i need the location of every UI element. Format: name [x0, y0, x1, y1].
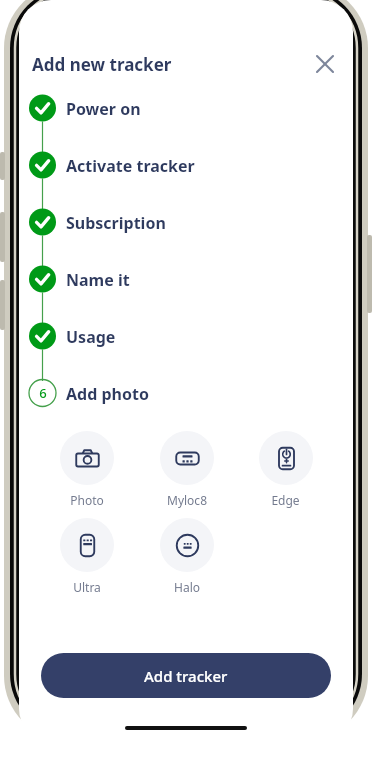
button[interactable]: Name it [19, 265, 353, 322]
staticText: Subscription [66, 212, 166, 234]
staticText: Power on [66, 98, 141, 120]
staticText: Add photo [66, 383, 149, 405]
staticText: Name it [66, 269, 130, 291]
button[interactable]: Halo [137, 518, 236, 595]
staticText: 6 [39, 384, 47, 402]
staticText: Usage [66, 326, 116, 348]
button[interactable]: Myloc8 [137, 431, 236, 508]
staticText: Edge [271, 492, 300, 508]
staticText: Myloc8 [167, 492, 207, 508]
staticText: Photo [70, 492, 104, 508]
button[interactable]: Add tracker [41, 653, 331, 698]
button[interactable]: 6 [19, 379, 353, 421]
staticText: Activate tracker [66, 155, 195, 177]
staticText: Add tracker [144, 666, 228, 686]
button[interactable]: Photo [37, 431, 137, 508]
staticText: Add new tracker [32, 53, 172, 76]
staticText: Ultra [73, 579, 101, 595]
button[interactable]: Ultra [37, 518, 137, 595]
button[interactable]: Usage [19, 322, 353, 379]
button[interactable]: Power on [19, 94, 353, 151]
staticText: Halo [174, 579, 200, 595]
button[interactable]: Activate tracker [19, 151, 353, 208]
button[interactable]: Subscription [19, 208, 353, 265]
button[interactable]: Close [308, 47, 342, 81]
button[interactable]: Edge [236, 431, 335, 508]
